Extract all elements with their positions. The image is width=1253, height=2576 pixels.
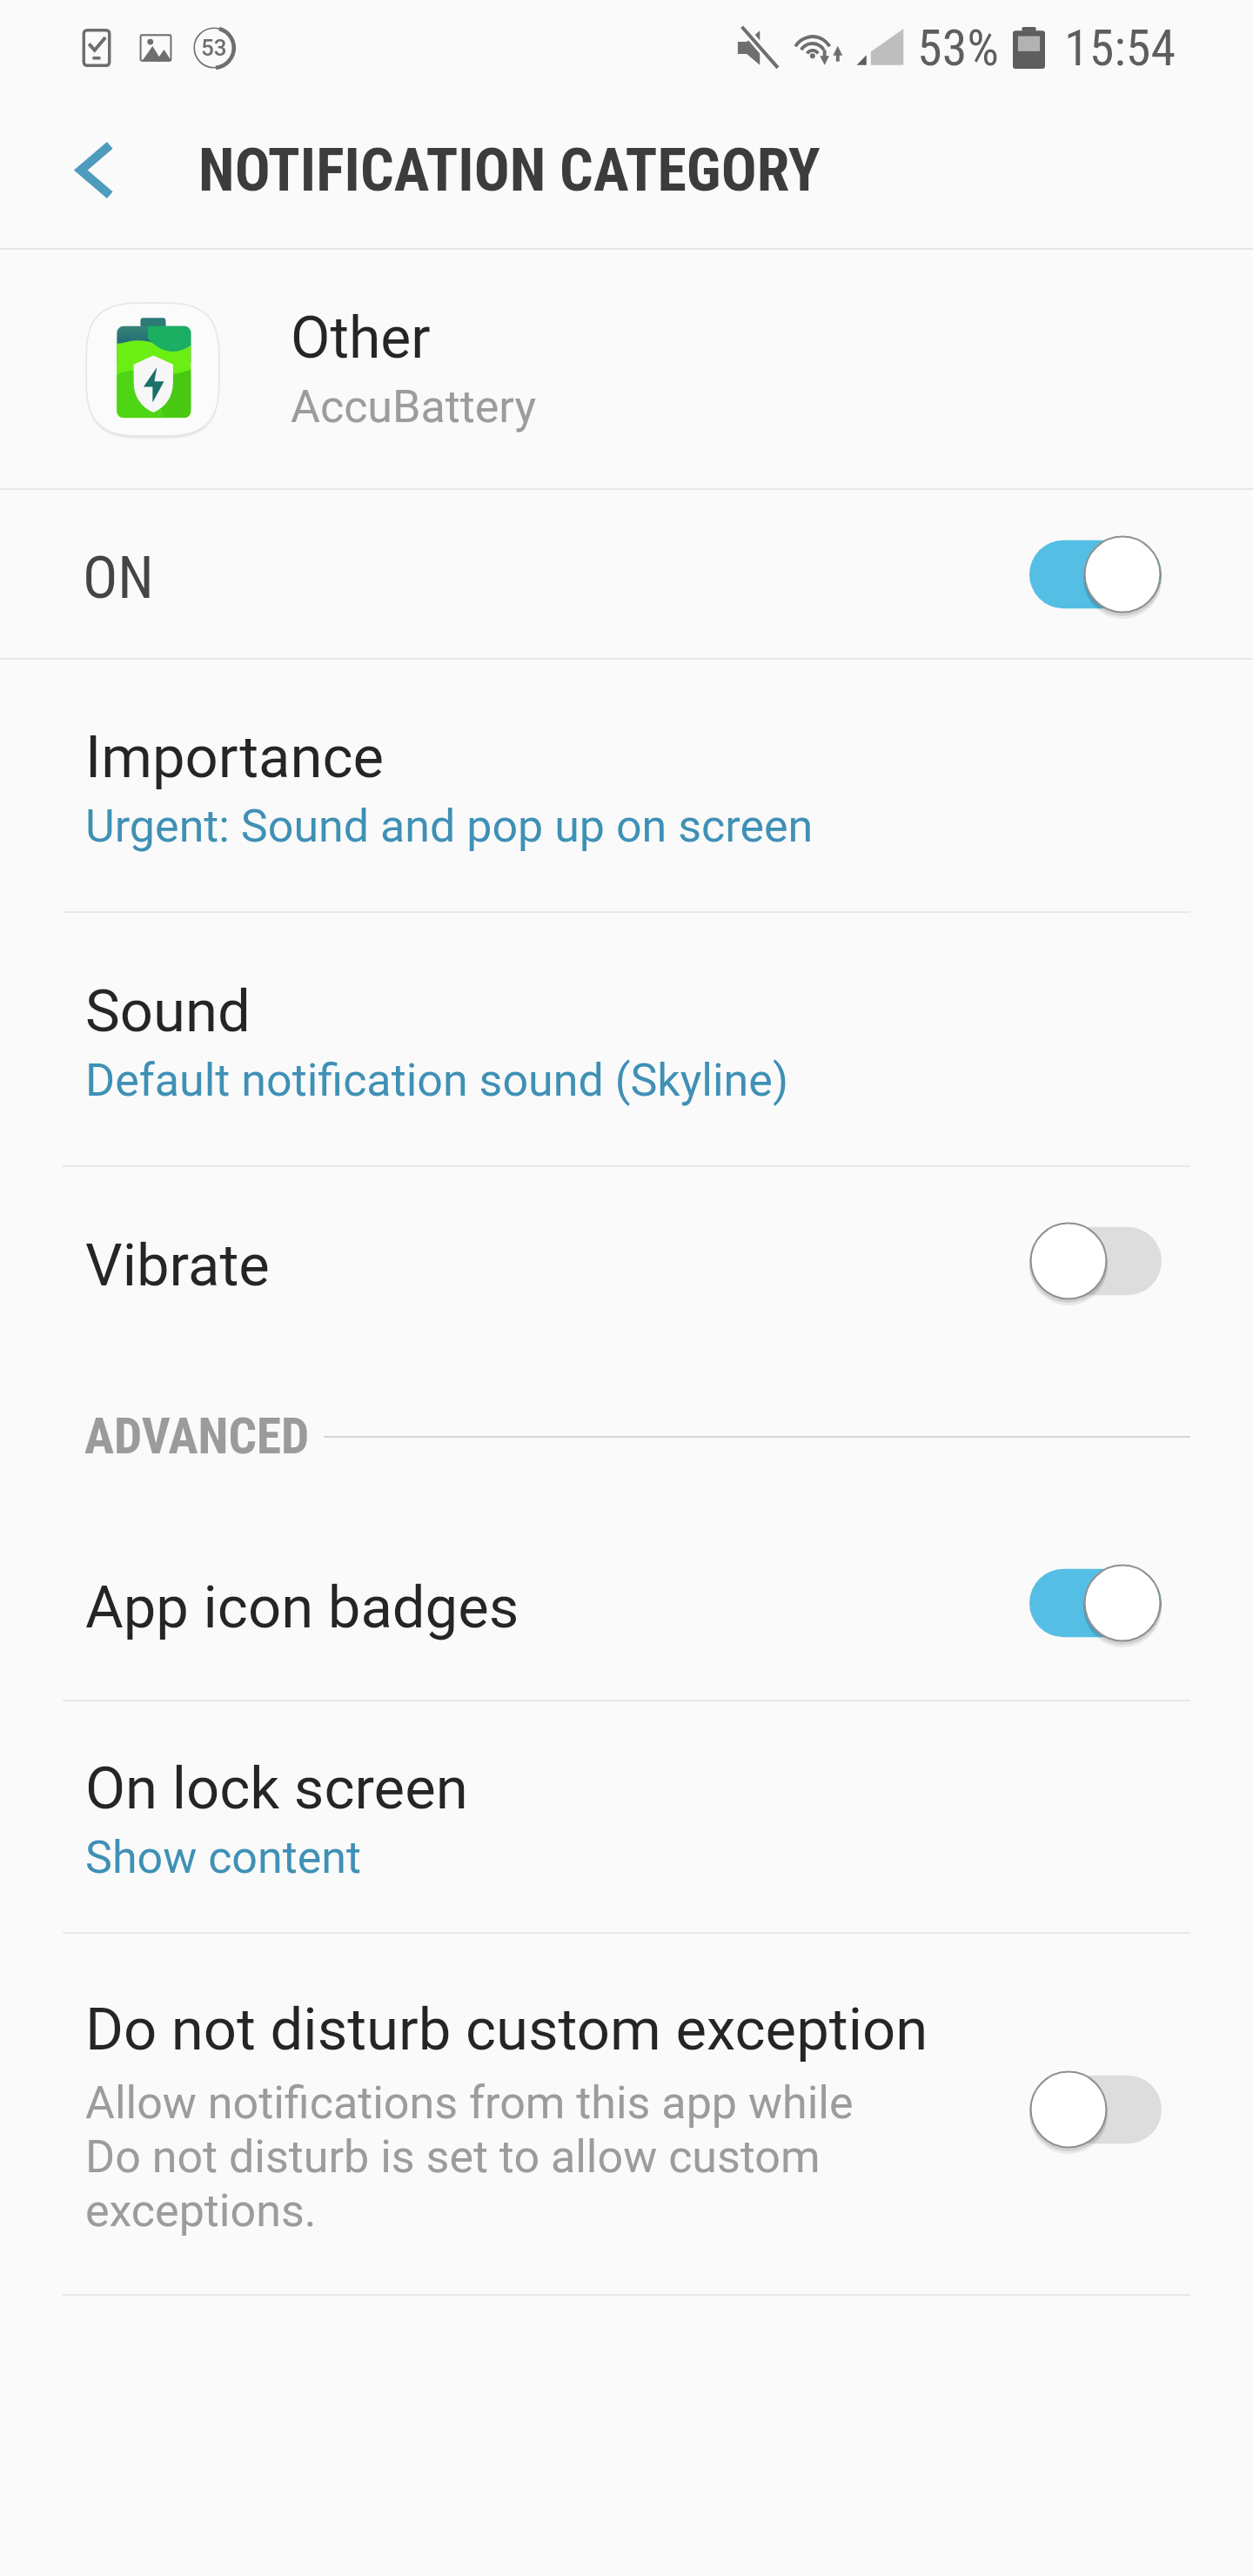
staticText: ADVANCED [84, 1407, 310, 1466]
staticText: Importance [85, 723, 385, 792]
button[interactable]: On lock screen [0, 1701, 1253, 1932]
staticText: 53% [917, 18, 999, 77]
button[interactable]: Navigate up [55, 130, 135, 210]
button[interactable]: ON [0, 490, 1253, 658]
button[interactable]: Switch on [1029, 535, 1162, 614]
button[interactable]: Importance [0, 660, 1253, 911]
staticText: 15:54 [1064, 18, 1176, 77]
staticText: NOTIFICATION CATEGORY [198, 136, 821, 205]
button[interactable]: App icon badges [0, 1506, 1253, 1700]
staticText: Sound [85, 977, 251, 1046]
button[interactable]: Switch off [1029, 1222, 1162, 1300]
staticText: On lock screen [85, 1754, 468, 1823]
button[interactable]: Vibrate [0, 1167, 1253, 1355]
staticText: AccuBattery [291, 380, 536, 433]
button[interactable]: Switch on [1029, 1564, 1162, 1642]
button[interactable]: Do not disturb custom exception [0, 1934, 1253, 2294]
staticText: Default notification sound (Skyline) [85, 1054, 788, 1107]
button[interactable]: Other [0, 250, 1253, 488]
staticText: Show content [85, 1831, 362, 1884]
staticText: Allow notifications from this app while … [85, 2076, 854, 2237]
staticText: Vibrate [85, 1231, 1029, 1300]
staticText: App icon badges [85, 1573, 1029, 1642]
staticText: Urgent: Sound and pop up on screen [85, 800, 814, 853]
staticText: 53 [201, 35, 227, 61]
button[interactable]: Switch off [1029, 2070, 1162, 2149]
staticText: ON [83, 544, 1029, 613]
staticText: Do not disturb custom exception [85, 1996, 928, 2064]
button[interactable]: Sound [0, 913, 1253, 1165]
staticText: Other [291, 305, 431, 372]
